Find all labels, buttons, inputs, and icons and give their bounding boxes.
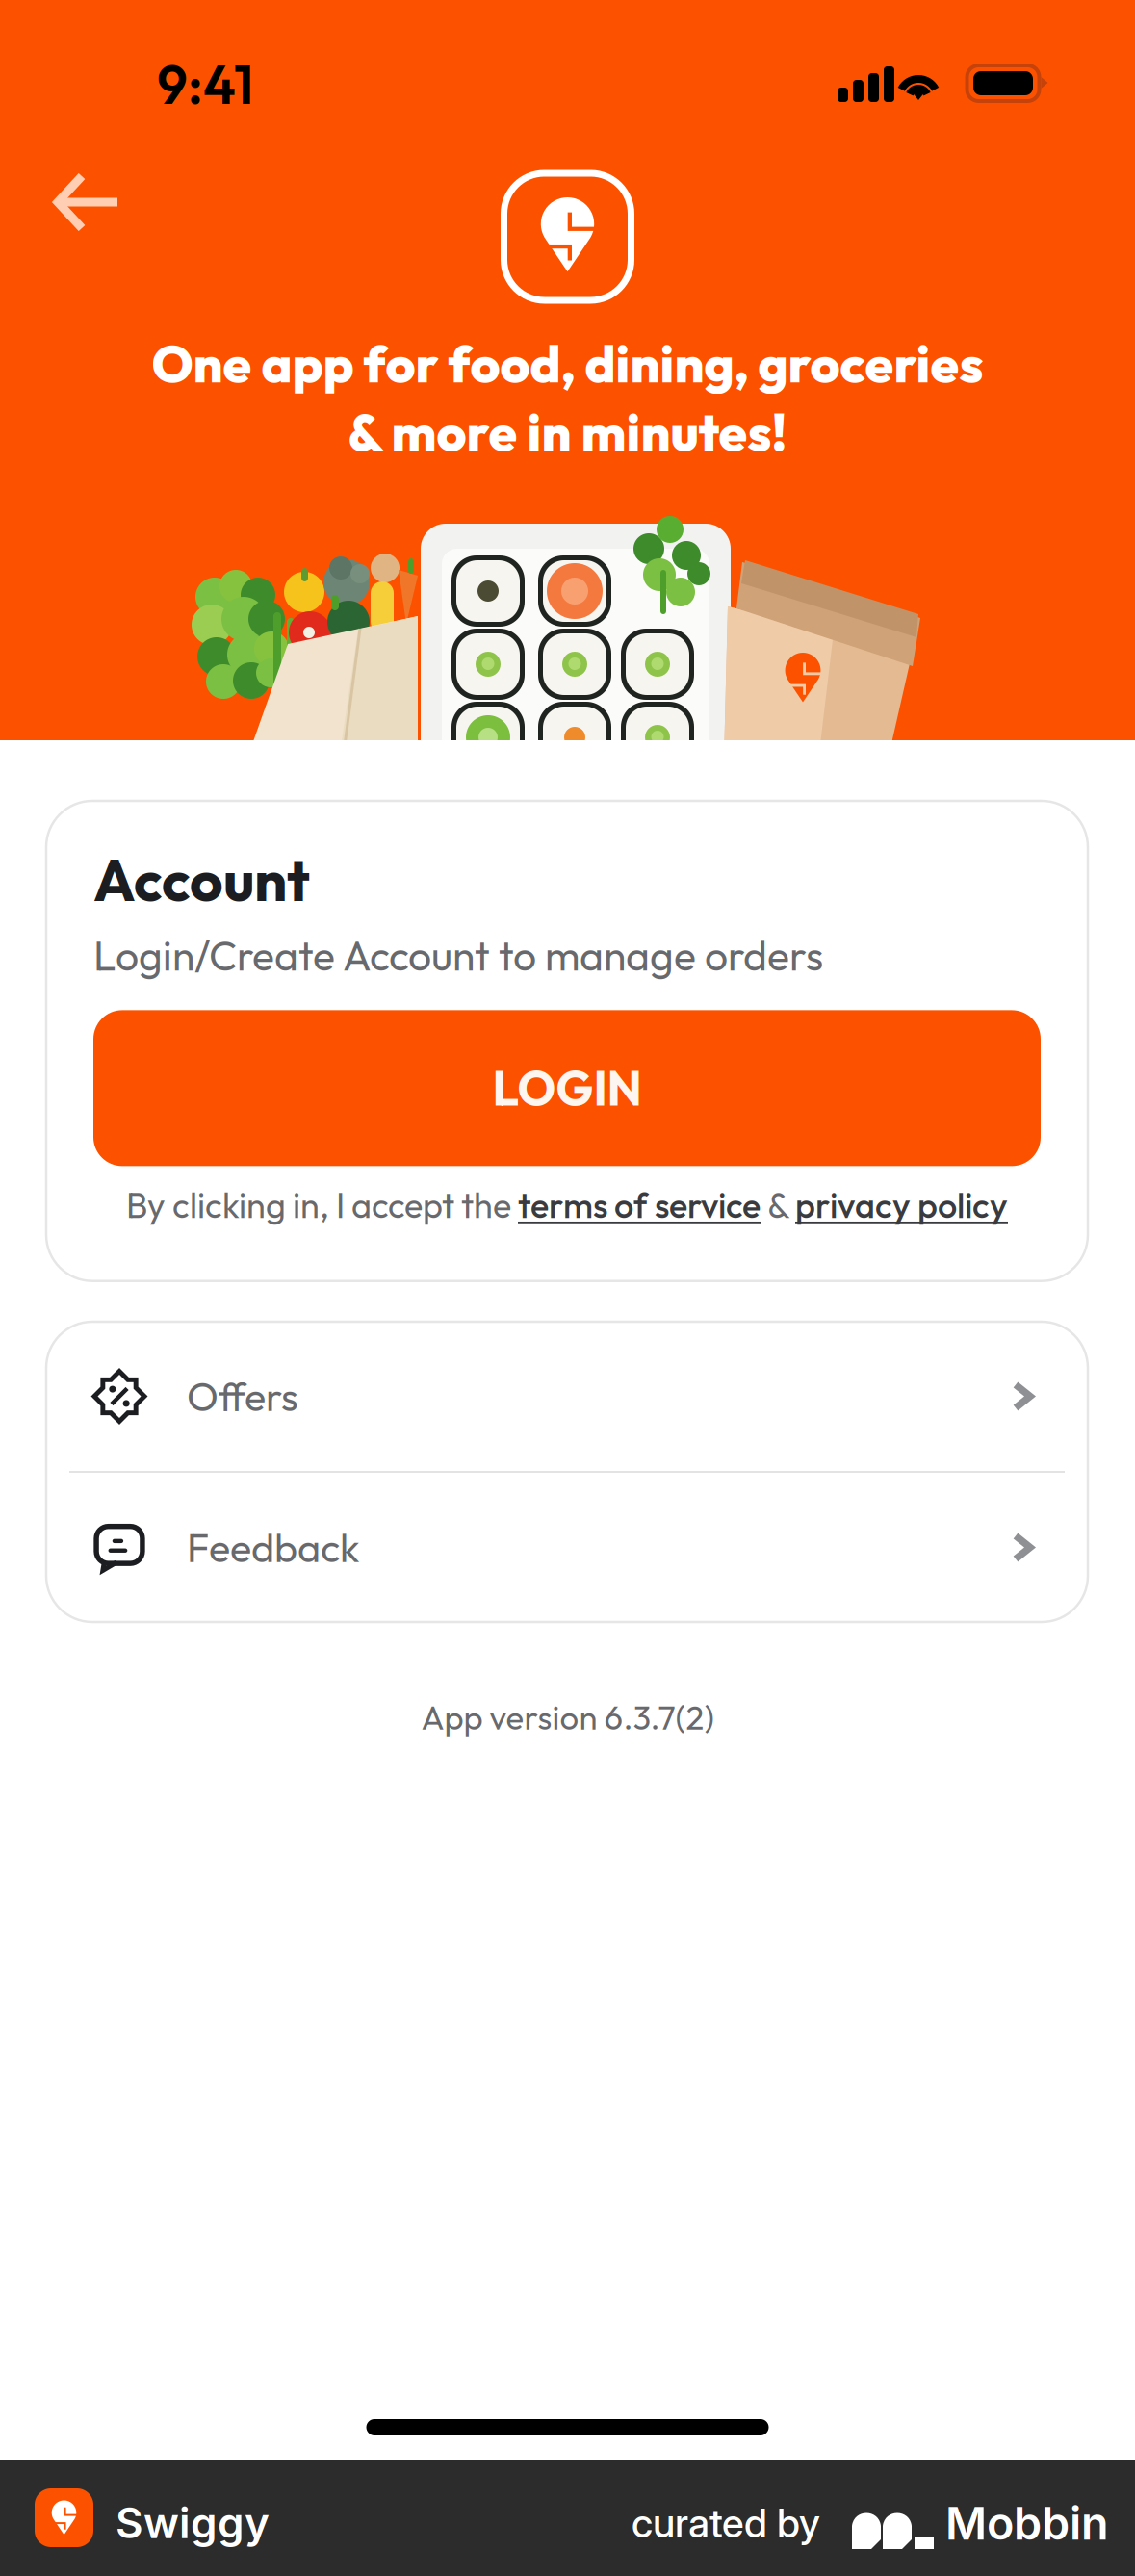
staticText: & more in minutes! — [348, 400, 787, 464]
button[interactable]: Offers — [46, 1322, 1088, 1471]
staticText: By clicking in, I accept the — [126, 1183, 518, 1227]
button[interactable]: Back — [42, 162, 131, 243]
staticText: privacy policy — [795, 1183, 1008, 1227]
staticText: Account — [93, 843, 310, 916]
staticText: Feedback — [187, 1522, 360, 1573]
button[interactable]: LOGIN — [93, 1010, 1041, 1166]
staticText: Login/Create Account to manage orders — [93, 930, 823, 981]
staticText: Offers — [187, 1371, 298, 1421]
staticText: Mobbin — [945, 2496, 1109, 2550]
staticText: LOGIN — [492, 1058, 642, 1118]
button[interactable]: terms of service — [518, 1183, 761, 1227]
staticText: terms of service — [518, 1183, 761, 1227]
staticText: One app for food, dining, groceries — [152, 331, 983, 396]
staticText: App version 6.3.7(2) — [421, 1696, 714, 1738]
button[interactable]: privacy policy — [795, 1183, 1008, 1227]
staticText: 9:41 — [157, 50, 254, 118]
staticText: curated by — [632, 2499, 820, 2547]
button[interactable]: Feedback — [46, 1473, 1088, 1622]
staticText: Swiggy — [116, 2497, 270, 2548]
staticText: & — [761, 1183, 795, 1227]
